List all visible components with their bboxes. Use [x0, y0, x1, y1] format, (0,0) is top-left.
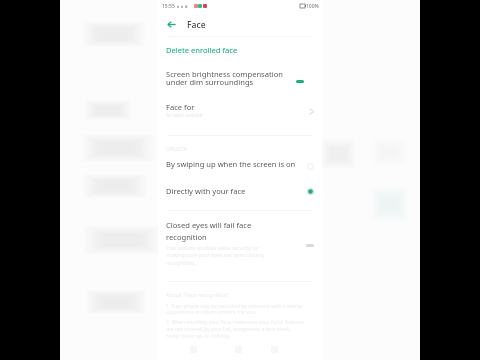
staticText: Delete enrolled face: [166, 45, 238, 55]
button[interactable]: Open: [306, 106, 317, 117]
button[interactable]: Select option: [306, 162, 315, 171]
staticText: About "Face recognition": [166, 291, 229, 298]
staticText: recognition: [166, 232, 207, 242]
button[interactable]: [158, 44, 322, 60]
button[interactable]: Turn on: [304, 241, 316, 249]
staticText: 1. Your phone may be unlocked by someone…: [166, 303, 303, 310]
staticText: Screen brightness compensation: [166, 69, 283, 79]
button[interactable]: [158, 216, 322, 272]
staticText: 100%: [306, 3, 319, 10]
staticText: Face: [187, 19, 206, 31]
staticText: recognition.: [166, 259, 196, 266]
staticText: appearance or others present the you.: [166, 309, 257, 316]
staticText: UNLOCK: [166, 145, 187, 152]
staticText: making sure your eyes are open during: [166, 251, 264, 258]
staticText: 2. When enrolling your face, make sure y…: [166, 319, 305, 326]
button[interactable]: Turn off: [294, 77, 306, 85]
button[interactable]: Select option: [306, 187, 315, 196]
button[interactable]: [158, 180, 322, 202]
button[interactable]: Back: [164, 17, 179, 32]
button[interactable]: [158, 155, 322, 177]
staticText: By swiping up when the screen is on: [166, 159, 296, 169]
staticText: This feature enables extra security by: [166, 244, 259, 251]
button[interactable]: [158, 64, 322, 94]
staticText: under dim surroundings: [166, 77, 254, 87]
button[interactable]: [158, 98, 322, 126]
staticText: 15:55: [162, 3, 175, 10]
staticText: are not covered by your hat, sunglasses,…: [166, 326, 291, 333]
staticText: heavy make up, or clothing.: [166, 333, 231, 340]
staticText: Directly with your face: [166, 186, 246, 196]
staticText: Face for: [166, 102, 195, 112]
staticText: Screen unlock: [166, 111, 203, 119]
staticText: Closed eyes will fail face: [166, 220, 252, 230]
